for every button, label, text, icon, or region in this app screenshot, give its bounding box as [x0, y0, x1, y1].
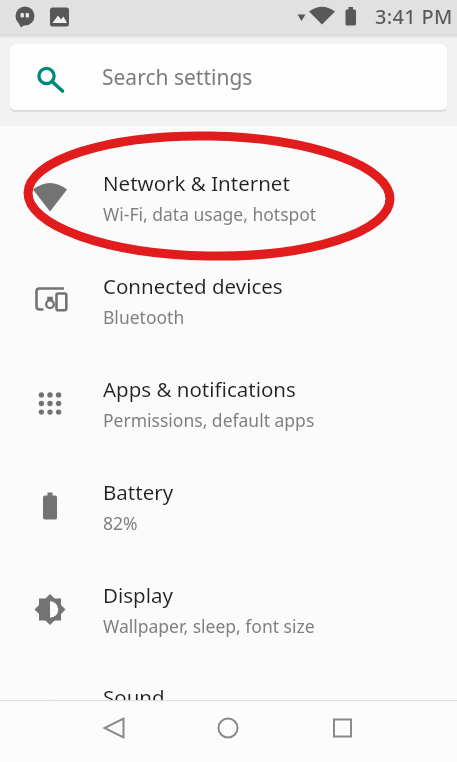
button[interactable]: Network & Internet — [0, 146, 457, 249]
staticText: Battery — [103, 478, 174, 506]
staticText: Search settings — [102, 63, 253, 92]
staticText: Connected devices — [103, 272, 283, 300]
staticText: 3:41 PM — [375, 3, 453, 30]
staticText: Bluetooth — [103, 305, 185, 329]
staticText: Apps & notifications — [103, 375, 296, 403]
button[interactable] — [0, 700, 153, 762]
button[interactable]: Search settings — [10, 44, 447, 110]
staticText: Sound — [103, 683, 165, 711]
button[interactable]: Connected devices — [0, 249, 457, 352]
staticText: Display — [103, 581, 173, 609]
button[interactable]: Display — [0, 558, 457, 661]
button[interactable]: Battery — [0, 455, 457, 558]
button[interactable] — [305, 700, 457, 762]
staticText: Permissions, default apps — [103, 408, 315, 432]
staticText: 82% — [103, 511, 138, 535]
staticText: Volume, vibration, Do Not Disturb — [103, 716, 381, 740]
button[interactable]: Apps & notifications — [0, 352, 457, 455]
staticText: Wallpaper, sleep, font size — [103, 614, 315, 638]
staticText: Network & Internet — [103, 169, 290, 197]
staticText: Wi-Fi, data usage, hotspot — [103, 202, 317, 226]
button[interactable]: Sound — [0, 661, 457, 762]
button[interactable] — [153, 700, 305, 762]
